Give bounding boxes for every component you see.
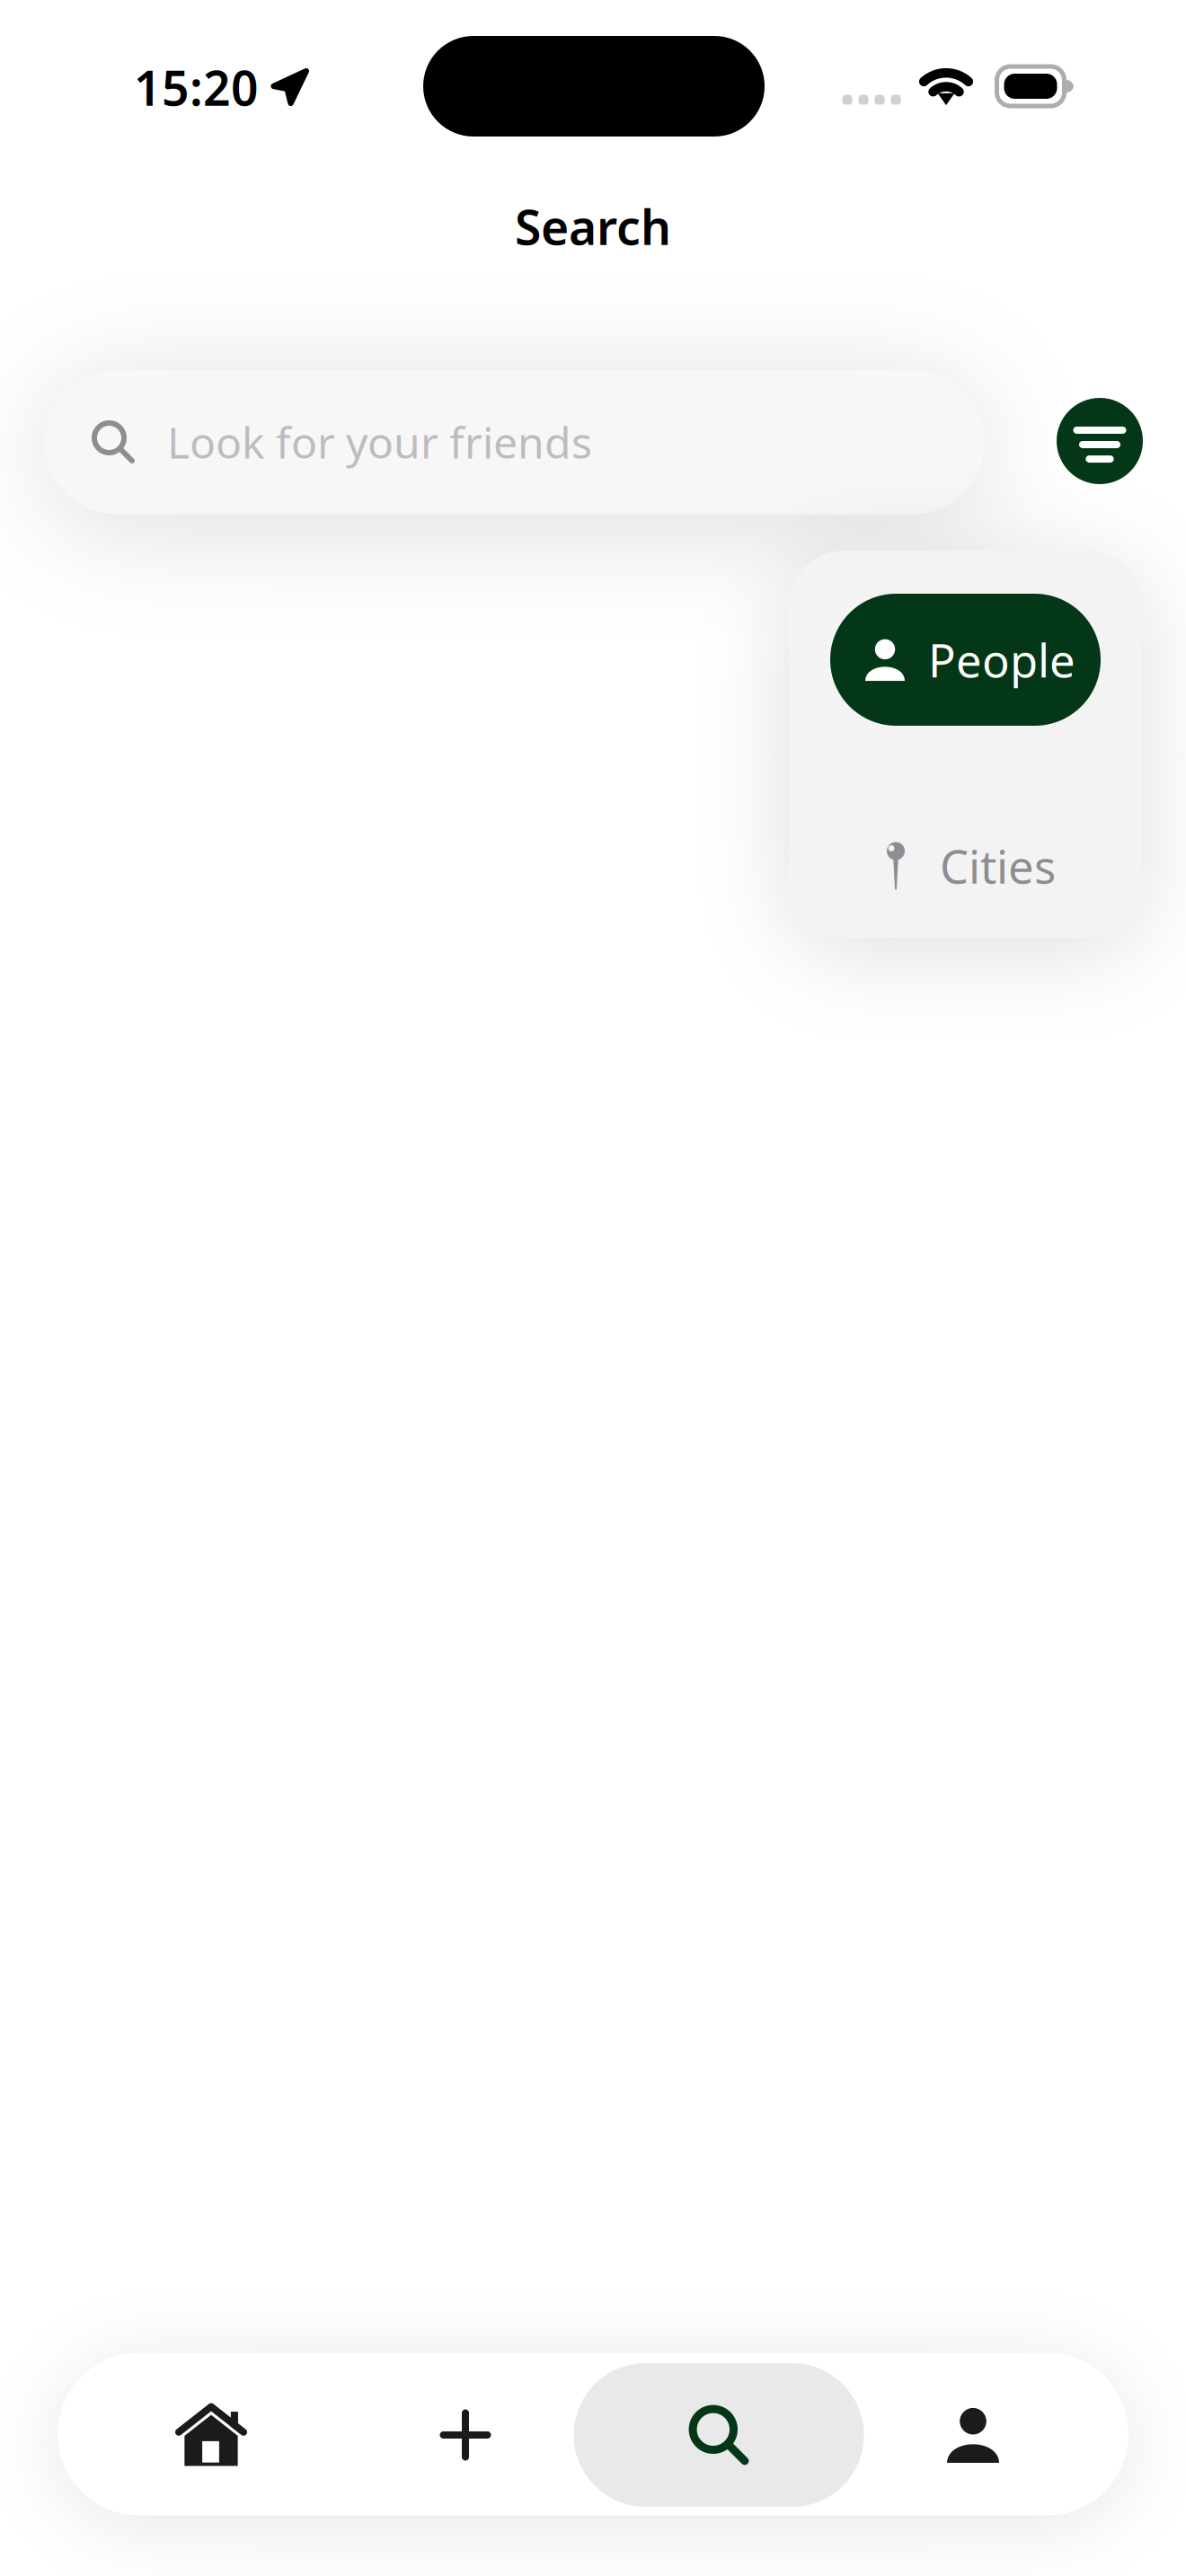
button[interactable]: Search (574, 2363, 864, 2507)
staticText: People (928, 630, 1075, 690)
button[interactable]: Home (108, 2354, 314, 2516)
staticText: Cities (940, 836, 1056, 896)
button[interactable]: Profile (870, 2354, 1076, 2516)
staticText: 15:20 (134, 55, 259, 119)
button[interactable]: Create (362, 2354, 569, 2516)
button[interactable]: People (830, 594, 1101, 726)
button[interactable]: Filter (1057, 398, 1143, 484)
button[interactable]: Cities (830, 813, 1101, 919)
staticText: Look for your friends (167, 413, 592, 470)
staticText: Search (515, 195, 671, 258)
button[interactable]: Look for your friends (44, 370, 985, 514)
